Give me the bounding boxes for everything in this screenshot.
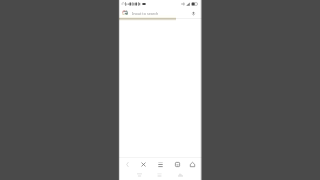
button[interactable]: Home [155,170,164,179]
button[interactable]: Stop loading [139,158,148,170]
button[interactable]: Recents [176,170,185,179]
button[interactable]: Back [123,158,132,170]
button[interactable]: Input to search [119,8,202,18]
button[interactable]: Back [135,170,144,179]
button[interactable]: Tabs [173,158,182,170]
staticText: Input to search [132,11,159,16]
button[interactable]: Menu [156,158,165,170]
button[interactable]: Voice search [189,9,198,18]
button[interactable]: Home [188,158,197,170]
